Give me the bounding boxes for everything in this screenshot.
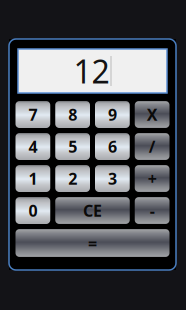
button[interactable]: 0 — [15, 197, 50, 224]
button[interactable]: 9 — [95, 101, 130, 128]
staticText: 4 — [28, 136, 37, 157]
button[interactable]: 8 — [55, 101, 90, 128]
button[interactable]: 6 — [95, 133, 130, 160]
staticText: / — [149, 136, 156, 157]
staticText: = — [88, 232, 97, 254]
button[interactable]: 3 — [95, 165, 130, 192]
button[interactable]: 5 — [55, 133, 90, 160]
button[interactable]: 4 — [15, 133, 50, 160]
staticText: 5 — [68, 136, 77, 157]
staticText: 3 — [108, 168, 117, 189]
staticText: 6 — [108, 136, 117, 157]
button[interactable]: - — [135, 197, 170, 224]
button[interactable]: X — [135, 101, 170, 128]
button[interactable]: 7 — [15, 101, 50, 128]
staticText: + — [148, 168, 157, 189]
button[interactable]: = — [15, 229, 169, 257]
staticText: CE — [83, 200, 102, 221]
staticText: 8 — [68, 104, 77, 125]
staticText: 1 — [28, 168, 37, 189]
staticText: 2 — [68, 168, 77, 189]
button[interactable]: CE — [55, 197, 130, 224]
staticText: 7 — [28, 104, 37, 125]
staticText: 9 — [108, 104, 117, 125]
staticText: X — [147, 104, 158, 125]
staticText: - — [150, 200, 155, 221]
button[interactable]: 1 — [15, 165, 50, 192]
button[interactable]: 2 — [55, 165, 90, 192]
button[interactable]: + — [135, 165, 170, 192]
button[interactable]: / — [135, 133, 170, 160]
staticText: 12 — [73, 50, 109, 92]
staticText: 0 — [28, 200, 37, 221]
